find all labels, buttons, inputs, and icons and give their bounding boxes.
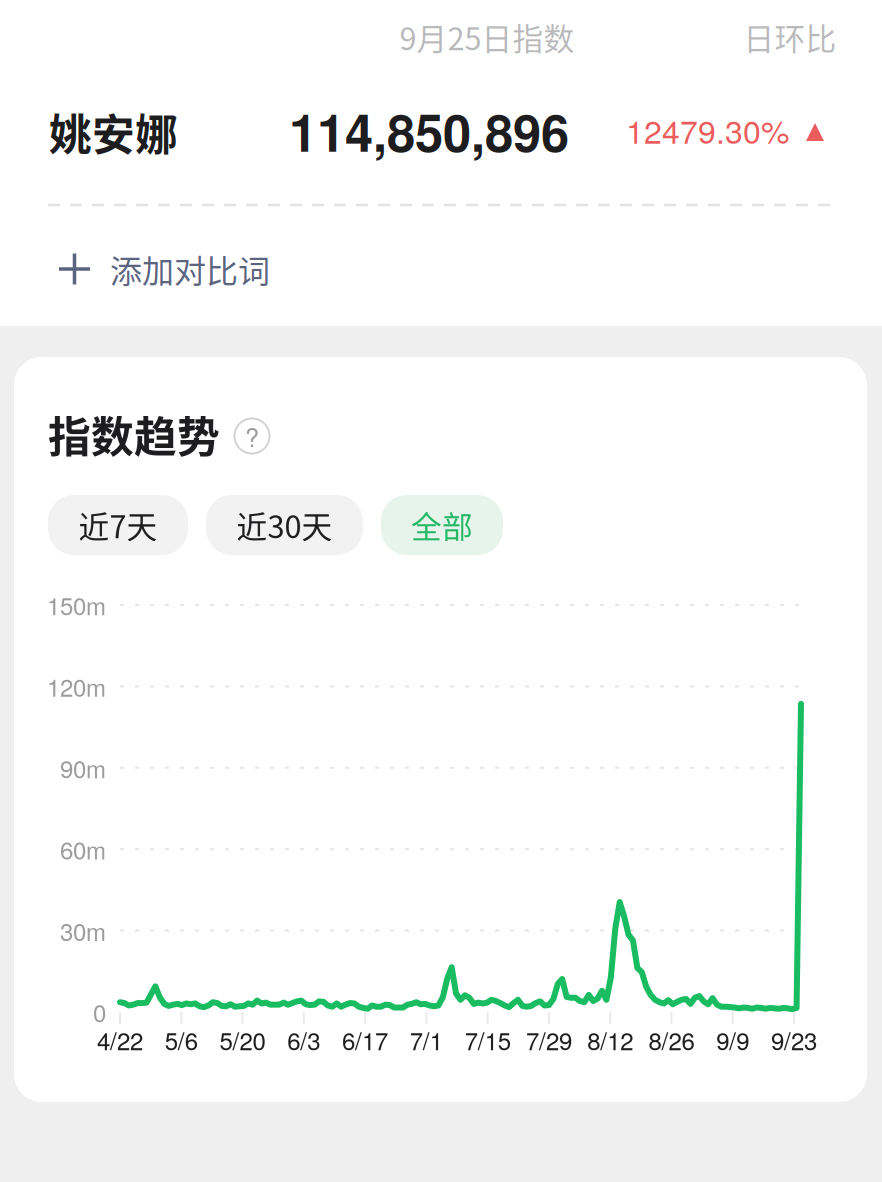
staticText: 6/17 bbox=[342, 1023, 388, 1057]
button[interactable]: 近30天 bbox=[206, 495, 363, 555]
staticText: 7/1 bbox=[410, 1023, 443, 1057]
staticText: 近30天 bbox=[236, 503, 332, 547]
staticText: 5/20 bbox=[219, 1023, 265, 1057]
staticText: 30m bbox=[60, 913, 106, 948]
staticText: 5/6 bbox=[165, 1023, 198, 1057]
staticText: 60m bbox=[60, 832, 106, 866]
staticText: 近7天 bbox=[78, 503, 157, 547]
staticText: 指数趋势 bbox=[48, 403, 220, 465]
staticText: 150m bbox=[47, 588, 106, 622]
staticText: 姚安娜 bbox=[49, 101, 178, 163]
button[interactable]: 添加对比词 bbox=[0, 230, 420, 308]
staticText: 114,850,896 bbox=[289, 95, 569, 167]
staticText: 8/12 bbox=[587, 1023, 633, 1057]
staticText: 6/3 bbox=[287, 1023, 320, 1057]
button[interactable]: 指数趋势说明 bbox=[234, 418, 269, 453]
staticText: 4/22 bbox=[97, 1023, 143, 1057]
staticText: 7/15 bbox=[465, 1023, 511, 1057]
button[interactable]: 全部 bbox=[381, 495, 503, 555]
staticText: 9/23 bbox=[771, 1023, 817, 1057]
staticText: 12479.30% bbox=[626, 107, 789, 153]
staticText: 120m bbox=[47, 669, 106, 704]
staticText: 8/26 bbox=[648, 1023, 694, 1057]
staticText: 90m bbox=[60, 751, 106, 785]
button[interactable]: 近7天 bbox=[48, 495, 188, 555]
staticText: 添加对比词 bbox=[110, 246, 270, 292]
staticText: ? bbox=[245, 418, 259, 454]
staticText: 全部 bbox=[411, 503, 473, 547]
staticText: 0 bbox=[93, 995, 106, 1029]
staticText: 9/9 bbox=[716, 1023, 749, 1057]
staticText: 7/29 bbox=[526, 1023, 572, 1057]
staticText: 9月25日指数 bbox=[399, 15, 574, 59]
staticText: 日环比 bbox=[743, 15, 836, 59]
